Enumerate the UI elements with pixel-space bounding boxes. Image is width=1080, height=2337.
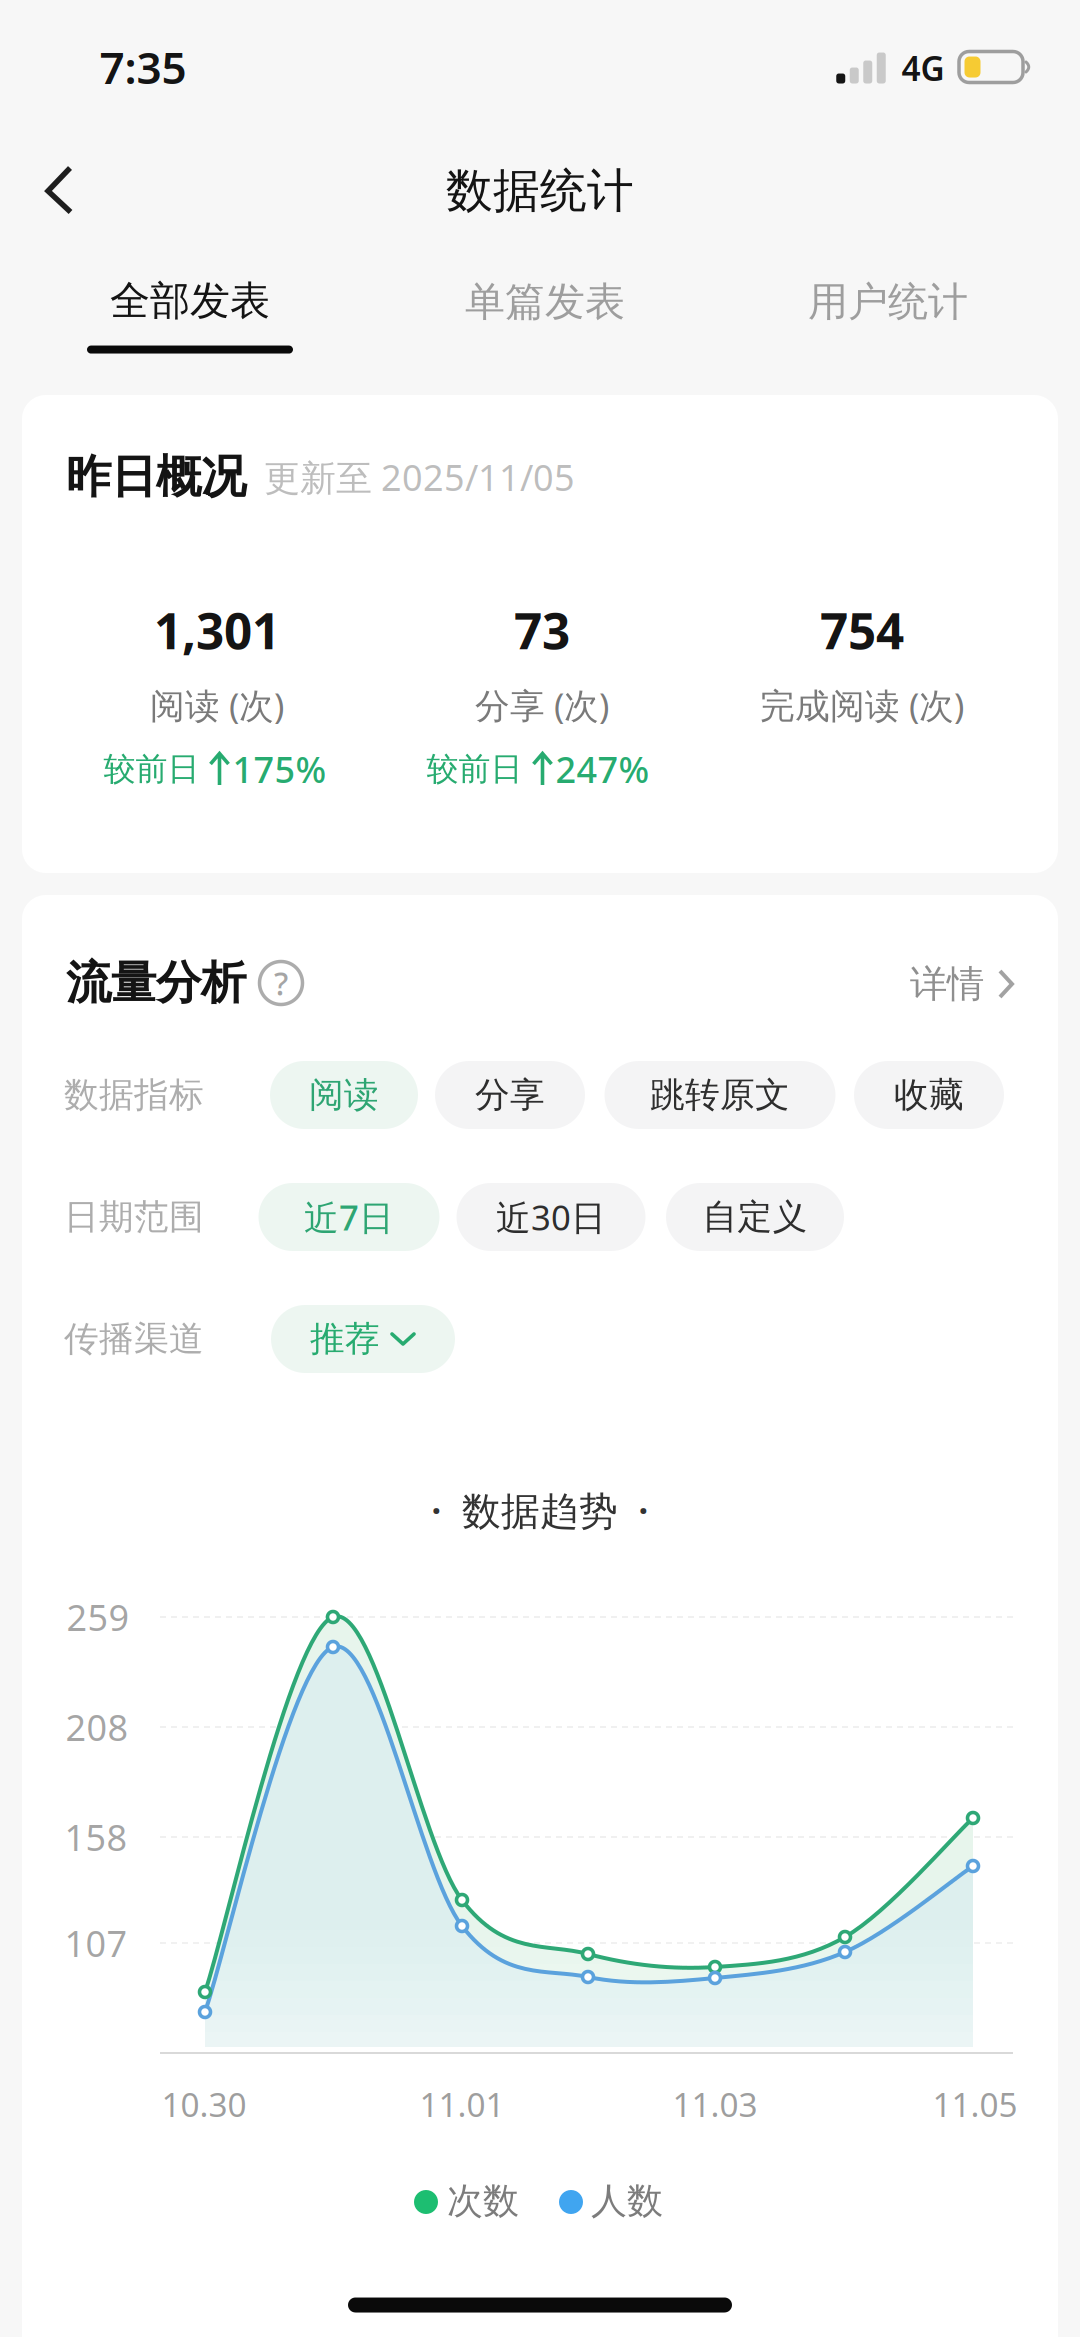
button[interactable]: 用户统计 xyxy=(758,267,1018,337)
button[interactable]: 全部发表 xyxy=(87,276,293,353)
staticText: 11.01 xyxy=(419,2082,504,2126)
staticText: 日期范围 xyxy=(64,1196,204,1238)
staticText: 较前日 xyxy=(426,749,522,789)
staticText: 175% xyxy=(232,745,326,793)
staticText: 数据指标 xyxy=(64,1074,204,1116)
staticText: 4G xyxy=(901,46,944,90)
staticText: 近7日 xyxy=(304,1194,394,1240)
staticText: 跳转原文 xyxy=(650,1074,790,1116)
staticText: 详情 xyxy=(910,961,984,1007)
staticText: 全部发表 xyxy=(110,276,270,325)
staticText: 完成阅读 (次) xyxy=(760,682,964,728)
staticText: 分享 xyxy=(475,1074,545,1116)
staticText: 推荐 xyxy=(310,1318,380,1360)
staticText: 259 xyxy=(66,1593,129,1641)
staticText: ? xyxy=(274,962,288,1004)
staticText: 754 xyxy=(820,597,904,663)
staticText: 阅读 (次) xyxy=(150,682,284,728)
staticText: 11.03 xyxy=(672,2082,757,2126)
staticText: 数据统计 xyxy=(446,162,634,220)
staticText: 更新至 2025/11/05 xyxy=(264,453,575,501)
button[interactable]: 分享 xyxy=(435,1061,585,1129)
staticText: 158 xyxy=(64,1813,127,1861)
button[interactable]: 收藏 xyxy=(854,1061,1004,1129)
staticText: 11.05 xyxy=(932,2082,1017,2126)
staticText: 近30日 xyxy=(496,1194,606,1240)
button[interactable]: 详情 xyxy=(910,954,1014,1014)
staticText: 7:35 xyxy=(99,38,186,96)
button[interactable]: 说明 xyxy=(258,960,304,1006)
staticText: 次数 xyxy=(447,2179,519,2223)
staticText: 208 xyxy=(65,1703,128,1751)
button[interactable]: 近30日 xyxy=(456,1183,645,1251)
staticText: 用户统计 xyxy=(808,277,968,326)
button[interactable]: 单篇发表 xyxy=(415,267,675,337)
staticText: 较前日 xyxy=(103,749,199,789)
staticText: 107 xyxy=(64,1919,127,1967)
staticText: 73 xyxy=(514,597,570,663)
staticText: 分享 (次) xyxy=(475,682,609,728)
button[interactable]: 阅读 xyxy=(270,1061,418,1129)
staticText: 流量分析 xyxy=(66,955,246,1011)
staticText: 人数 xyxy=(591,2179,663,2223)
staticText: 阅读 xyxy=(309,1074,379,1116)
staticText: 1,301 xyxy=(154,597,280,663)
button[interactable]: 近7日 xyxy=(258,1183,439,1251)
button[interactable]: 推荐 xyxy=(271,1305,455,1373)
staticText: · 数据趋势 · xyxy=(431,1484,649,1536)
staticText: 传播渠道 xyxy=(64,1318,204,1360)
staticText: 自定义 xyxy=(702,1196,807,1238)
button[interactable]: 跳转原文 xyxy=(604,1061,835,1129)
staticText: 收藏 xyxy=(894,1074,964,1116)
button[interactable]: 自定义 xyxy=(666,1183,844,1251)
staticText: 单篇发表 xyxy=(465,277,625,326)
staticText: 昨日概况 xyxy=(66,449,246,505)
staticText: 247% xyxy=(555,745,649,793)
staticText: 10.30 xyxy=(161,2082,246,2126)
button[interactable]: Back xyxy=(44,166,96,214)
